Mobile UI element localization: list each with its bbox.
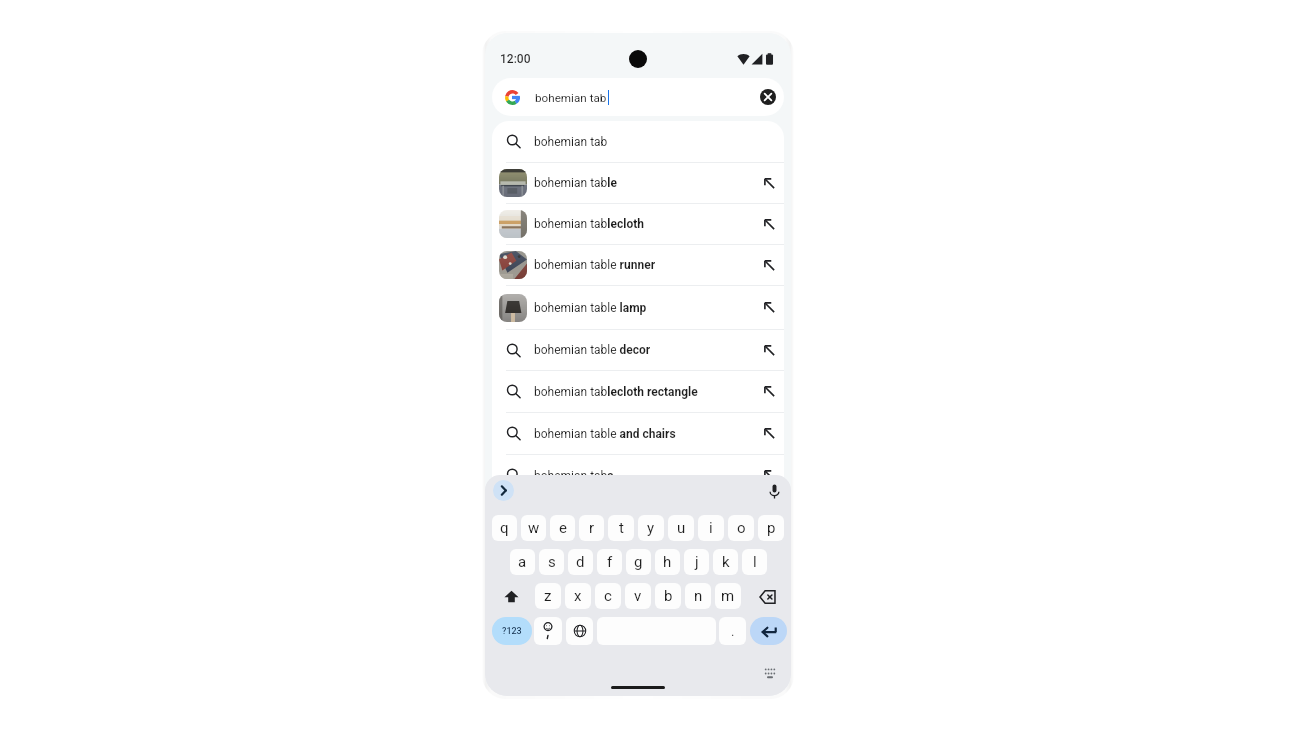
- staticText: t: [619, 519, 624, 537]
- staticText: c: [604, 587, 612, 605]
- button[interactable]: Shift: [492, 583, 531, 609]
- button[interactable]: bohemian tabs: [492, 455, 784, 496]
- button[interactable]: Change language: [566, 617, 593, 645]
- button[interactable]: l: [742, 549, 767, 575]
- button[interactable]: Insert suggestion: [756, 286, 780, 329]
- button[interactable]: i: [698, 515, 724, 541]
- button[interactable]: b: [655, 583, 681, 609]
- staticText: bohemian table and chairs: [534, 427, 676, 441]
- staticText: q: [500, 519, 509, 537]
- staticText: x: [574, 587, 582, 605]
- button[interactable]: z: [535, 583, 561, 609]
- button[interactable]: t: [608, 515, 634, 541]
- staticText: l: [753, 553, 757, 571]
- button[interactable]: Insert suggestion: [756, 455, 780, 496]
- staticText: 12:00: [500, 52, 531, 66]
- button[interactable]: x: [565, 583, 591, 609]
- button[interactable]: d: [568, 549, 593, 575]
- staticText: r: [589, 519, 595, 537]
- button[interactable]: Insert suggestion: [756, 413, 780, 454]
- staticText: bohemian tab: [535, 91, 607, 105]
- button[interactable]: a: [510, 549, 535, 575]
- button[interactable]: j: [684, 549, 709, 575]
- button[interactable]: Clear search: [760, 89, 776, 105]
- staticText: bohemian tab: [534, 135, 608, 149]
- button[interactable]: h: [655, 549, 680, 575]
- button[interactable]: bohemian table: [492, 163, 784, 203]
- button[interactable]: e: [550, 515, 575, 541]
- staticText: u: [677, 519, 686, 537]
- button[interactable]: Backspace: [745, 583, 784, 609]
- staticText: b: [664, 587, 673, 605]
- staticText: p: [767, 519, 776, 537]
- staticText: a: [518, 553, 527, 571]
- button[interactable]: Insert suggestion: [756, 204, 780, 244]
- button[interactable]: Emoji: [534, 617, 562, 645]
- button[interactable]: y: [638, 515, 664, 541]
- button[interactable]: ?123: [492, 617, 532, 645]
- button[interactable]: g: [626, 549, 651, 575]
- staticText: h: [663, 553, 672, 571]
- staticText: o: [737, 519, 746, 537]
- button[interactable]: bohemian tab: [492, 121, 784, 162]
- staticText: e: [559, 519, 567, 537]
- staticText: s: [548, 553, 556, 571]
- button[interactable]: bohemian table lamp: [492, 286, 784, 329]
- button[interactable]: q: [492, 515, 517, 541]
- staticText: k: [722, 553, 730, 571]
- staticText: d: [576, 553, 585, 571]
- staticText: v: [634, 587, 642, 605]
- staticText: bohemian table runner: [534, 258, 656, 272]
- button[interactable]: Insert suggestion: [756, 163, 780, 203]
- staticText: ?123: [502, 626, 522, 637]
- button[interactable]: r: [579, 515, 604, 541]
- button[interactable]: bohemian tab: [492, 78, 784, 116]
- staticText: bohemian tablecloth: [534, 217, 644, 231]
- button[interactable]: Voice input: [769, 484, 780, 499]
- staticText: i: [709, 519, 713, 537]
- staticText: bohemian tablecloth rectangle: [534, 385, 698, 399]
- staticText: g: [634, 553, 643, 571]
- staticText: bohemian tabs: [534, 469, 614, 483]
- button[interactable]: bohemian tablecloth: [492, 204, 784, 244]
- button[interactable]: Enter: [750, 617, 787, 645]
- button[interactable]: v: [625, 583, 651, 609]
- button[interactable]: w: [521, 515, 546, 541]
- staticText: bohemian table: [534, 176, 617, 190]
- button[interactable]: s: [539, 549, 564, 575]
- staticText: bohemian table decor: [534, 343, 651, 357]
- staticText: f: [607, 553, 613, 571]
- staticText: y: [647, 519, 655, 537]
- staticText: bohemian table lamp: [534, 301, 647, 315]
- button[interactable]: u: [668, 515, 694, 541]
- button[interactable]: Insert suggestion: [756, 330, 780, 370]
- button[interactable]: k: [713, 549, 738, 575]
- button[interactable]: More suggestions: [493, 480, 514, 501]
- staticText: z: [544, 587, 552, 605]
- button[interactable]: Insert suggestion: [756, 245, 780, 285]
- button[interactable]: bohemian tablecloth rectangle: [492, 371, 784, 412]
- button[interactable]: bohemian table decor: [492, 330, 784, 370]
- button[interactable]: bohemian table and chairs: [492, 413, 784, 454]
- staticText: m: [721, 587, 735, 605]
- button[interactable]: p: [758, 515, 784, 541]
- staticText: j: [695, 553, 699, 571]
- button[interactable]: m: [715, 583, 741, 609]
- button[interactable]: f: [597, 549, 622, 575]
- button[interactable]: bohemian table runner: [492, 245, 784, 285]
- button[interactable]: c: [595, 583, 621, 609]
- button[interactable]: n: [685, 583, 711, 609]
- staticText: n: [694, 587, 703, 605]
- button[interactable]: Insert suggestion: [756, 371, 780, 412]
- button[interactable]: o: [728, 515, 754, 541]
- staticText: w: [528, 519, 540, 537]
- button[interactable]: .: [719, 617, 746, 645]
- staticText: .: [731, 624, 735, 639]
